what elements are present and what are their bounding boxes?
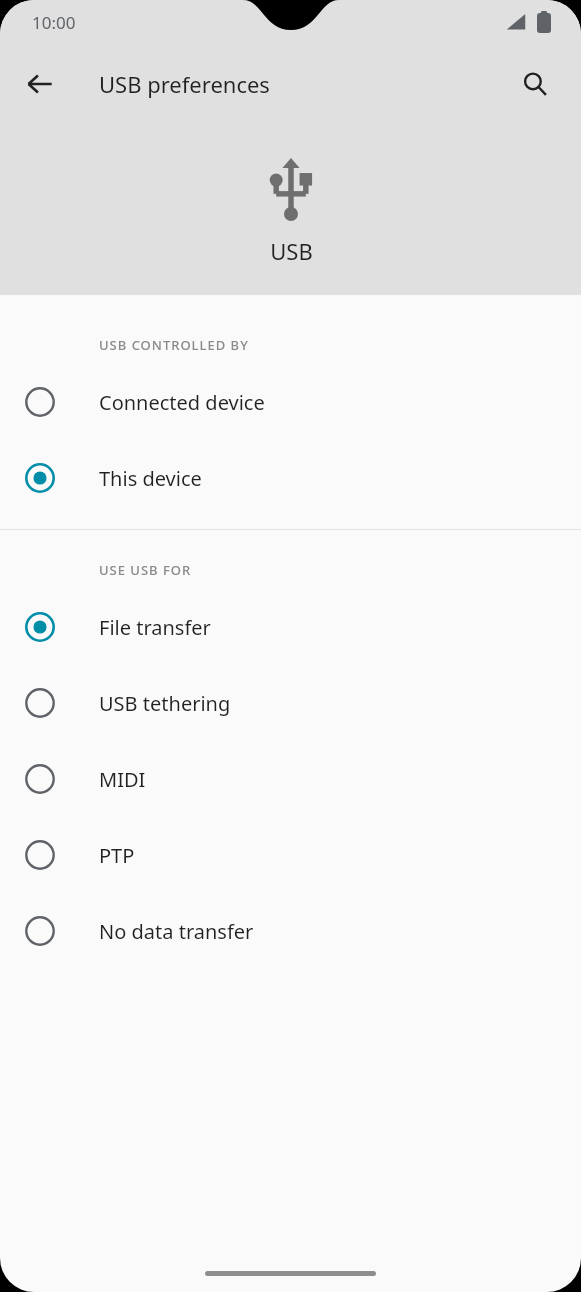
- staticText: USB CONTROLLED BY: [99, 336, 249, 354]
- staticText: 10:00: [32, 11, 76, 34]
- staticText: No data transfer: [99, 918, 254, 945]
- staticText: MIDI: [99, 766, 146, 793]
- staticText: PTP: [99, 842, 135, 869]
- button[interactable]: No data transfer: [0, 893, 581, 969]
- staticText: Connected device: [99, 389, 265, 416]
- staticText: USB preferences: [99, 69, 270, 99]
- staticText: USE USB FOR: [99, 561, 192, 579]
- button[interactable]: USB tethering: [0, 665, 581, 741]
- button[interactable]: This device: [0, 440, 581, 516]
- button[interactable]: Back: [16, 60, 64, 108]
- staticText: USB tethering: [99, 690, 231, 717]
- staticText: This device: [99, 465, 202, 492]
- button[interactable]: PTP: [0, 817, 581, 893]
- staticText: File transfer: [99, 614, 211, 641]
- button[interactable]: MIDI: [0, 741, 581, 817]
- button[interactable]: File transfer: [0, 589, 581, 665]
- button[interactable]: Search: [511, 60, 559, 108]
- button[interactable]: Connected device: [0, 364, 581, 440]
- staticText: USB: [270, 236, 313, 266]
